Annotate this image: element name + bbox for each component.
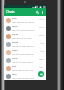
- staticText: Got all the files now th: [12, 61, 33, 63]
- button[interactable]: Anna: [4, 48, 46, 56]
- staticText: Ok that sounds good to: [12, 45, 35, 47]
- staticText: Call me later tonight ok: [12, 53, 34, 55]
- staticText: Chris: [12, 57, 18, 60]
- button[interactable]: More options: [40, 10, 45, 15]
- staticText: 09:15: [39, 26, 44, 29]
- staticText: David: [12, 41, 19, 44]
- button[interactable]: New chat: [38, 71, 44, 77]
- staticText: Yest: [40, 50, 44, 53]
- button[interactable]: Search: [35, 10, 40, 15]
- staticText: Let's meet up soon may: [12, 77, 35, 79]
- staticText: Mark: [12, 25, 18, 28]
- staticText: Sun: [40, 74, 44, 77]
- button[interactable]: Lisa: [4, 64, 46, 72]
- staticText: Anna: [12, 49, 18, 52]
- staticText: 08:40: [39, 34, 44, 37]
- button[interactable]: David: [4, 40, 46, 48]
- staticText: Chats: [6, 10, 15, 14]
- button[interactable]: Sarah: [4, 32, 46, 40]
- button[interactable]: Tom: [4, 72, 46, 80]
- staticText: Yest: [40, 42, 44, 45]
- staticText: See you tomorrow morn: [12, 29, 35, 31]
- button[interactable]: Mila: [4, 16, 46, 24]
- staticText: Great work on this one: [12, 69, 34, 71]
- button[interactable]: Chris: [4, 56, 46, 64]
- staticText: Sarah: [12, 33, 19, 36]
- staticText: Tom: [12, 73, 17, 76]
- staticText: Mon: [39, 58, 44, 61]
- staticText: Thanks a lot for that!: [12, 37, 32, 39]
- button[interactable]: Mark: [4, 24, 46, 32]
- staticText: 10:24: [39, 18, 44, 21]
- staticText: Hey! how are you doing: [12, 21, 35, 23]
- staticText: Mon: [39, 66, 44, 69]
- staticText: Lisa: [12, 65, 17, 68]
- staticText: Mila: [12, 17, 17, 20]
